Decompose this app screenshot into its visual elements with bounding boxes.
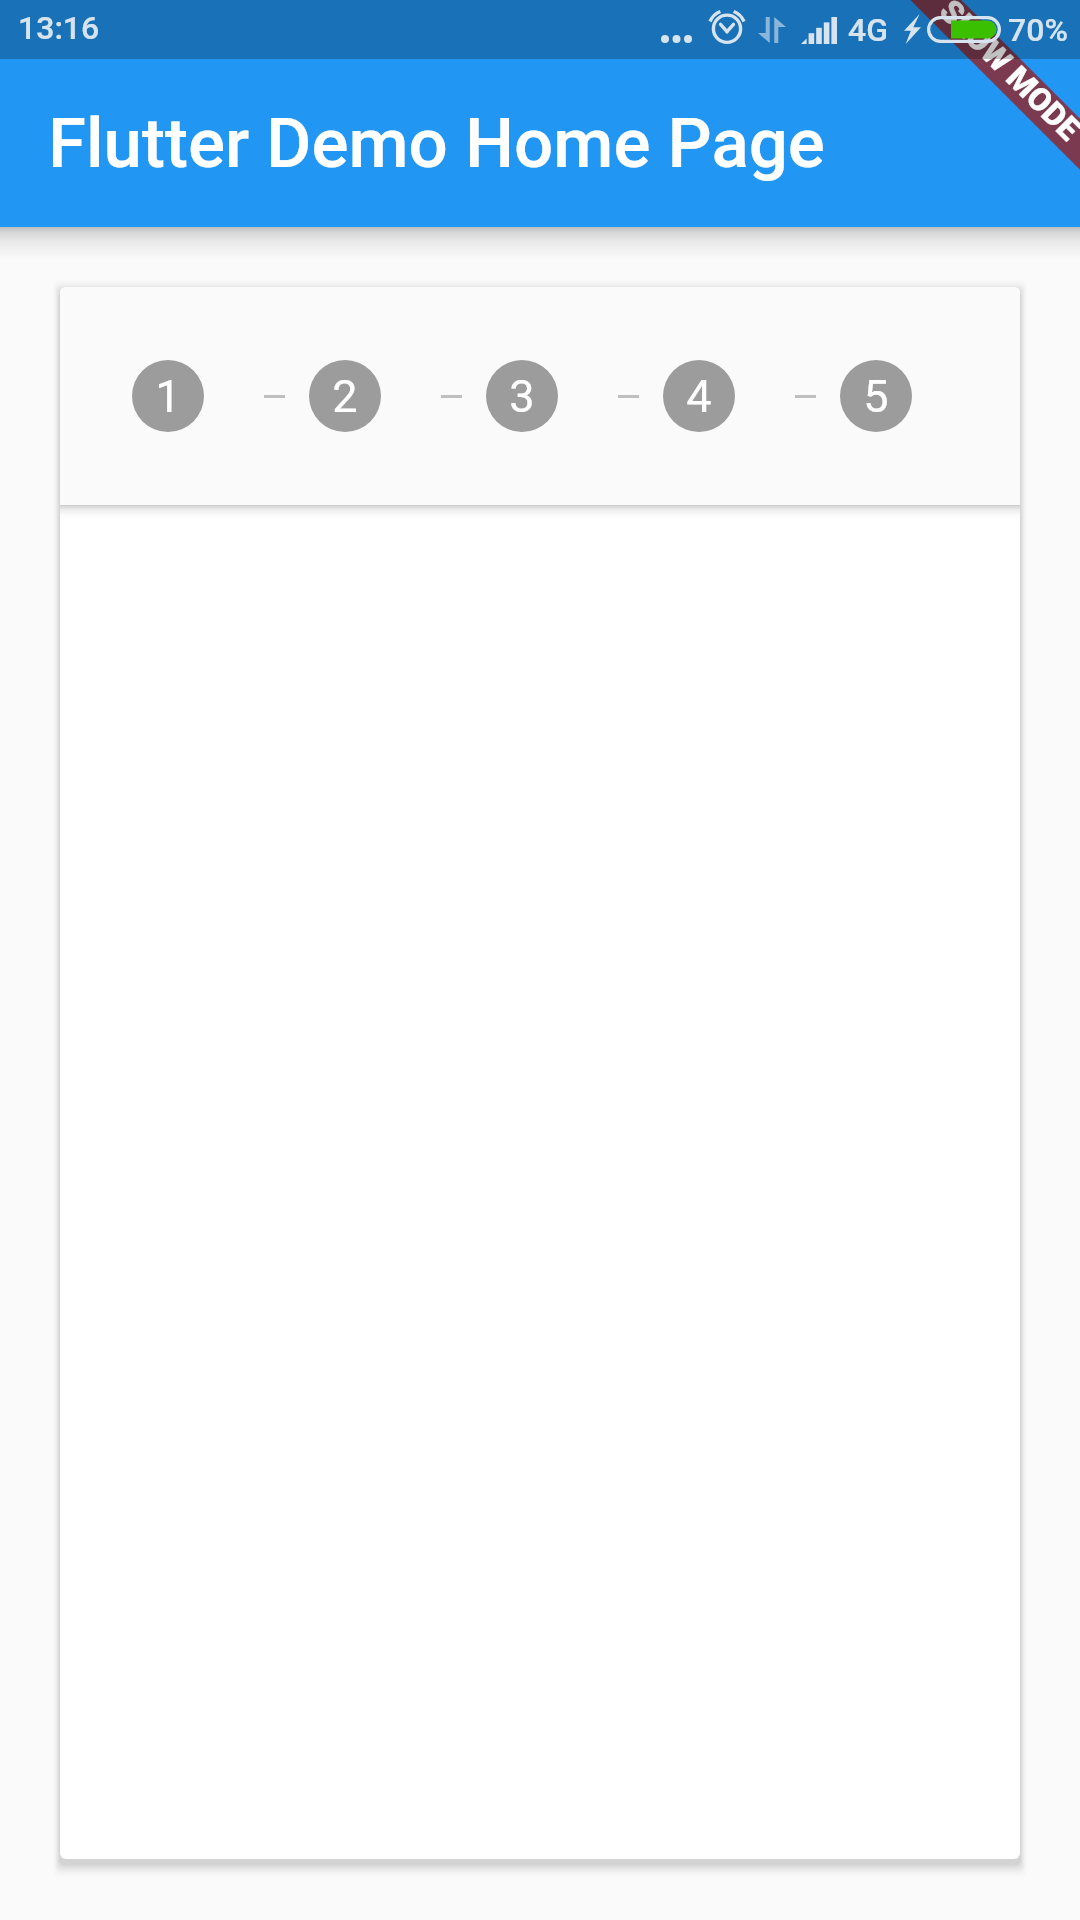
- other: Slow mode debug banner: [0, 0, 1080, 1920]
- button[interactable]: 2: [309, 360, 417, 432]
- button[interactable]: 4: [663, 360, 771, 432]
- button[interactable]: 3: [486, 360, 594, 432]
- staticText: 5: [863, 370, 889, 423]
- button[interactable]: 5: [840, 360, 948, 432]
- staticText: 2: [332, 370, 358, 423]
- staticText: 13:16: [18, 9, 100, 47]
- staticText: 4G: [848, 11, 888, 49]
- button[interactable]: 1: [132, 360, 240, 432]
- staticText: Flutter Demo Home Page: [48, 103, 825, 184]
- staticText: 70%: [1008, 11, 1068, 49]
- staticText: 1: [155, 370, 181, 423]
- staticText: 3: [509, 370, 535, 423]
- staticText: 4: [686, 370, 712, 423]
